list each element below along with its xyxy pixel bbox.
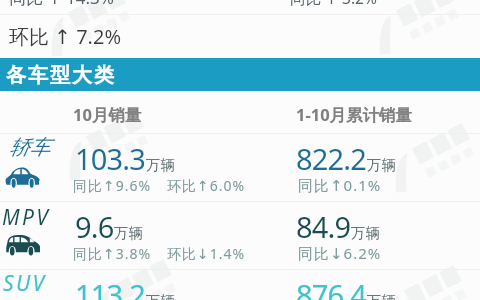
staticText: 同比↑9.6%: [73, 176, 152, 195]
staticText: 万辆: [114, 224, 143, 242]
staticText: 113.2: [75, 275, 146, 300]
staticText: 万辆: [146, 156, 175, 174]
staticText: 103.3: [75, 139, 146, 178]
staticText: 84.9: [296, 207, 351, 246]
staticText: 环比 ↑ 7.2%: [9, 23, 122, 50]
staticText: 环比↓1.4%: [167, 244, 246, 263]
staticText: 同比 ↑ 14.3%: [9, 0, 114, 9]
staticText: 万辆: [146, 292, 175, 300]
staticText: 同比↑0.1%: [298, 175, 382, 195]
button[interactable]: SUV: [0, 270, 480, 300]
staticText: 876.4: [296, 275, 367, 300]
staticText: 1-10月累计销量: [296, 103, 413, 126]
staticText: 同比↑3.8%: [73, 244, 152, 263]
staticText: 万辆: [351, 224, 380, 242]
button[interactable]: MPV: [0, 202, 480, 270]
staticText: MPV: [2, 203, 51, 232]
button[interactable]: 轿车: [0, 134, 480, 202]
staticText: SUV: [3, 269, 47, 298]
staticText: 同比 ↑ 3.2%: [290, 0, 377, 8]
staticText: 10月销量: [73, 103, 142, 126]
staticText: 各车型大类: [5, 63, 115, 88]
staticText: 轿车: [9, 134, 50, 160]
staticText: 环比↑6.0%: [167, 176, 246, 195]
staticText: 同比↓6.2%: [298, 243, 382, 263]
staticText: 9.6: [75, 207, 114, 246]
staticText: 822.2: [296, 139, 367, 178]
staticText: 万辆: [367, 292, 396, 300]
button[interactable]: 各车型大类: [0, 58, 480, 91]
staticText: 万辆: [367, 156, 396, 174]
